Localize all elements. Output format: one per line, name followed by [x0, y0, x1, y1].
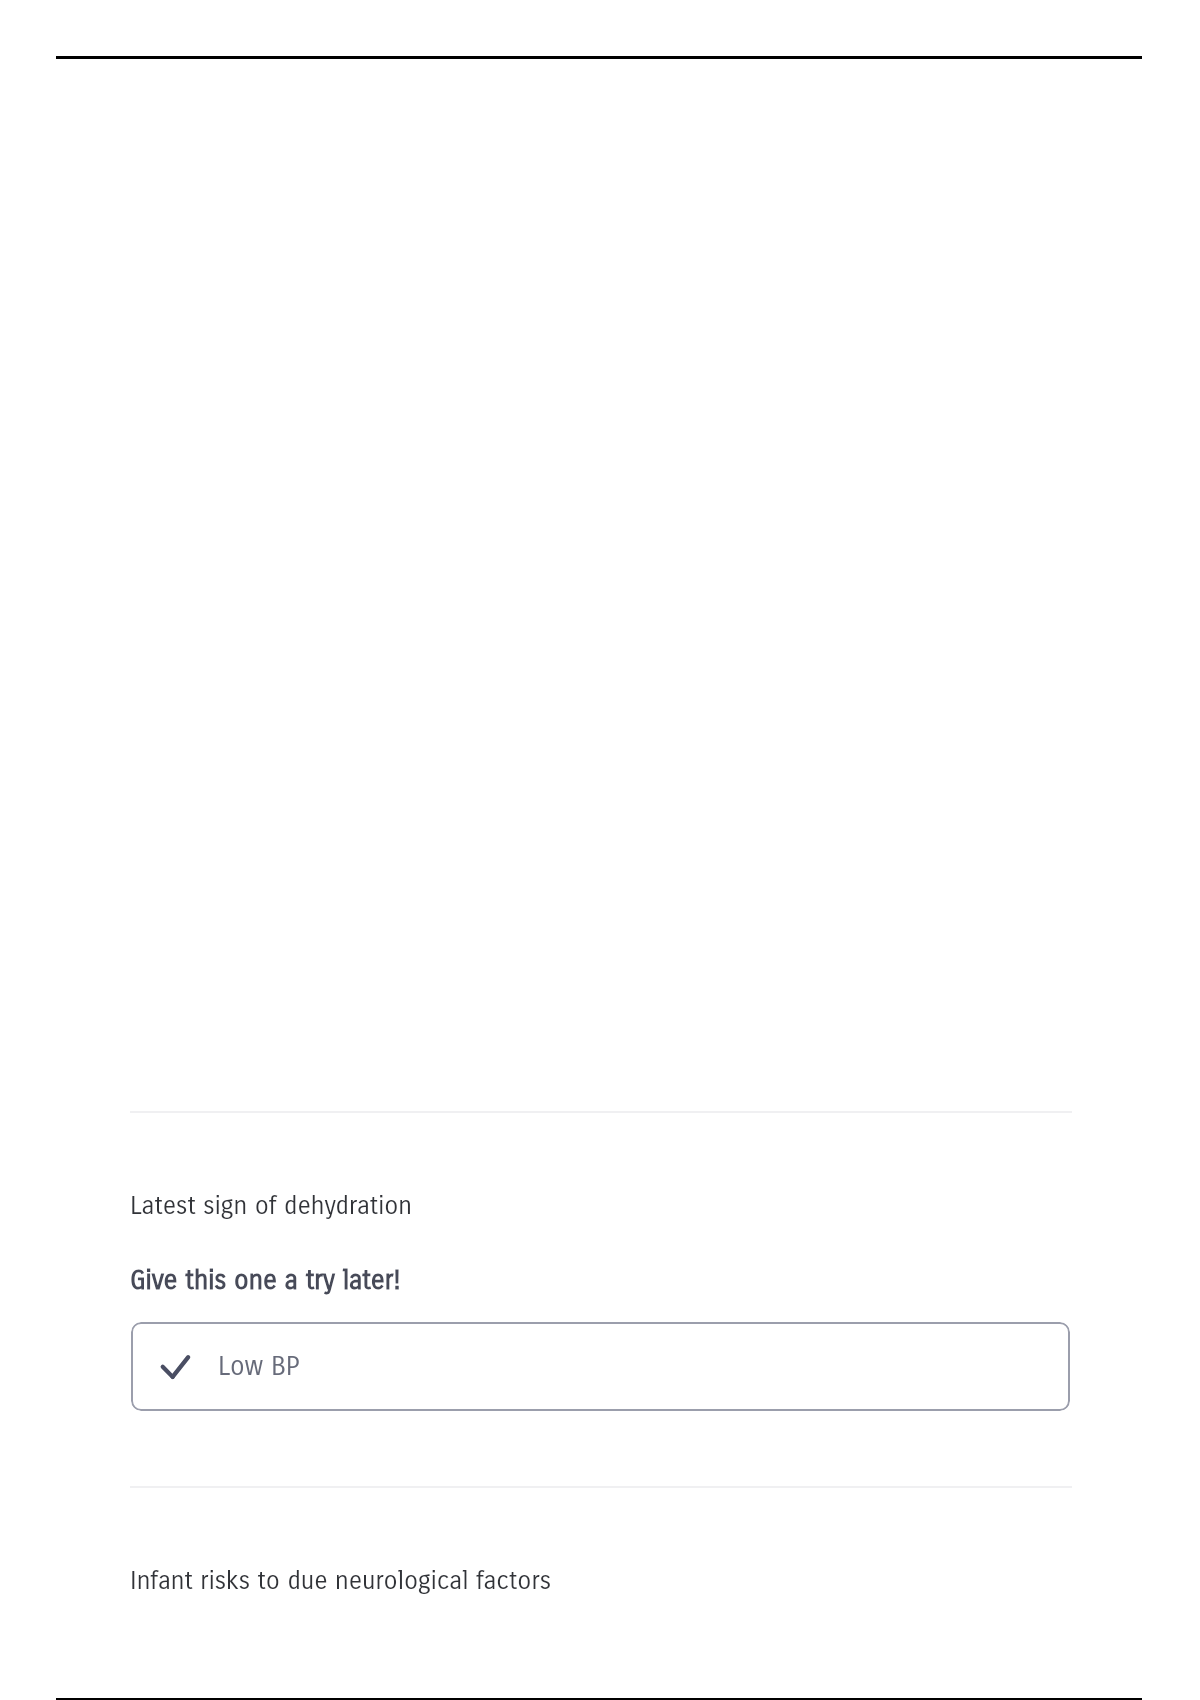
staticText: Give this one a try later!: [130, 1265, 401, 1296]
staticText: Infant risks to due neurological factors: [130, 1566, 552, 1596]
staticText: Low BP: [218, 1351, 300, 1382]
button[interactable]: Infant risks to due neurological factors: [130, 1566, 552, 1596]
button[interactable]: Latest sign of dehydration: [130, 1191, 413, 1221]
staticText: Latest sign of dehydration: [130, 1191, 413, 1221]
other: Selected answer: [160, 1352, 190, 1382]
button[interactable]: Selected answer: [131, 1322, 1070, 1411]
